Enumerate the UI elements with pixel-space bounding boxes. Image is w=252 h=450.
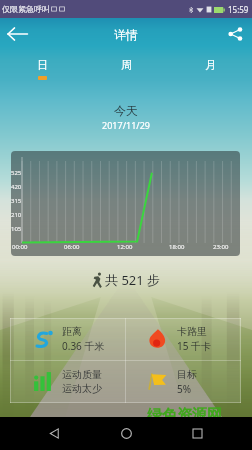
button[interactable]: 距离 xyxy=(10,318,125,360)
staticText: 卡路里 xyxy=(177,325,207,338)
staticText: 15 千卡 xyxy=(177,339,212,353)
button[interactable]: 周 xyxy=(84,52,168,82)
staticText: 315 xyxy=(11,197,22,205)
staticText: 105 xyxy=(11,225,22,233)
button[interactable]: Home xyxy=(110,417,143,450)
staticText: 12:00 xyxy=(117,243,133,251)
staticText: 525 xyxy=(11,169,22,177)
staticText: 420 xyxy=(11,183,22,191)
staticText: 目标 xyxy=(177,368,197,381)
staticText: 距离 xyxy=(62,325,82,338)
staticText: 月 xyxy=(205,58,216,72)
staticText: 今天 xyxy=(0,103,252,118)
button[interactable]: Recents xyxy=(181,417,214,450)
staticText: 2017/11/29 xyxy=(0,119,252,131)
button[interactable]: 运动质量 xyxy=(10,360,125,403)
staticText: 00:00 xyxy=(12,243,28,251)
staticText: 日 xyxy=(37,58,48,72)
staticText: 运动太少 xyxy=(62,382,102,395)
button[interactable]: 卡路里 xyxy=(125,318,241,360)
staticText: 运动质量 xyxy=(62,368,102,381)
staticText: 周 xyxy=(121,58,132,72)
staticText: 绿色资源网 xyxy=(147,406,222,425)
staticText: 共 521 步 xyxy=(105,271,161,289)
button[interactable]: 日 xyxy=(0,52,84,82)
staticText: www.downcc.com xyxy=(147,424,223,436)
staticText: 仅限紧急呼叫 xyxy=(2,4,50,14)
staticText: 18:00 xyxy=(169,243,185,251)
staticText: 5% xyxy=(177,382,192,396)
button[interactable]: Share xyxy=(218,18,252,50)
staticText: 23:00 xyxy=(213,243,229,251)
staticText: 06:00 xyxy=(64,243,80,251)
staticText: 210 xyxy=(11,211,22,219)
staticText: 详情 xyxy=(114,27,138,42)
staticText: 15:59 xyxy=(228,4,249,15)
staticText: 0.36 千米 xyxy=(62,339,105,353)
button[interactable]: Back xyxy=(38,417,71,450)
button[interactable]: Back xyxy=(0,18,34,50)
button[interactable]: 月 xyxy=(168,52,252,82)
button[interactable]: 目标 xyxy=(125,360,241,403)
